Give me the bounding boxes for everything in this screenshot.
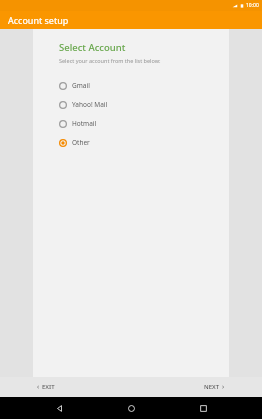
staticText: Gmail xyxy=(72,81,90,90)
button[interactable]: Gmail xyxy=(33,76,229,95)
button[interactable]: Yahoo! Mail xyxy=(33,95,229,114)
staticText: 10:00 xyxy=(246,2,259,9)
staticText: Select your account from the list below: xyxy=(59,57,161,64)
staticText: Account setup xyxy=(8,14,69,26)
button[interactable]: Home xyxy=(118,397,144,419)
button[interactable]: ‹ xyxy=(33,379,59,395)
staticText: Select Account xyxy=(59,41,126,54)
staticText: NEXT xyxy=(204,383,220,391)
button[interactable]: Other xyxy=(33,133,229,152)
staticText: Yahoo! Mail xyxy=(72,100,108,109)
staticText: › xyxy=(222,382,225,392)
button[interactable]: Back xyxy=(46,397,72,419)
button[interactable]: Hotmail xyxy=(33,114,229,133)
staticText: EXIT xyxy=(42,383,55,391)
button[interactable]: NEXT xyxy=(200,379,229,395)
staticText: Hotmail xyxy=(72,119,97,128)
staticText: Other xyxy=(72,138,90,147)
staticText: ‹ xyxy=(37,382,40,392)
button[interactable]: Recent apps xyxy=(190,397,216,419)
